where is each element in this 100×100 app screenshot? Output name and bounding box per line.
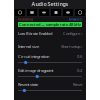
staticText: Internal size <box>18 44 39 49</box>
button[interactable]: Toolbar item 3 <box>39 9 49 16</box>
staticText: Connected — sample rate 48 kHz <box>19 22 81 27</box>
button[interactable]: Toolbar item 6 <box>75 9 85 16</box>
button[interactable]: Advanced <box>69 18 82 21</box>
staticText: Configure <box>63 31 80 36</box>
staticText: Circuit integration <box>18 54 49 59</box>
staticText: Low Bitrate Enabled <box>18 31 52 36</box>
button[interactable]: Low Bitrate Enabled <box>14 27 86 40</box>
button[interactable]: Internal size <box>14 40 86 53</box>
staticText: › <box>80 44 82 49</box>
staticText: Audio Settings <box>31 0 68 8</box>
staticText: Short setup <box>61 44 80 49</box>
staticText: Resent state <box>18 82 38 87</box>
staticText: Edit image dragpoint <box>18 68 53 73</box>
button[interactable]: Toolbar item 5 <box>63 9 73 16</box>
staticText: Advanced <box>69 18 82 21</box>
button[interactable]: Connected — sample rate 48 kHz <box>18 22 82 27</box>
staticText: Reset <box>73 82 82 87</box>
staticText: 0.6 <box>77 54 82 59</box>
staticText: 0.2 <box>77 68 82 73</box>
button[interactable]: Toolbar item 1 <box>15 9 25 16</box>
staticText: Recording <box>18 18 33 21</box>
button[interactable]: Toolbar item 2 <box>27 9 37 16</box>
staticText: › <box>80 31 82 36</box>
button[interactable]: Toolbar item 4 <box>51 9 61 16</box>
